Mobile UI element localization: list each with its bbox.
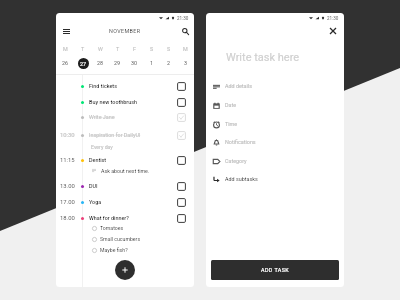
staticText: T xyxy=(81,46,85,52)
button[interactable]: Toggle done xyxy=(177,82,186,91)
button[interactable]: 1 xyxy=(143,57,160,69)
button[interactable]: Write Jane xyxy=(56,110,194,124)
staticText: M xyxy=(183,46,188,52)
button[interactable]: Add task xyxy=(115,260,135,280)
staticText: 13.00 xyxy=(60,183,75,190)
staticText: ADD TASK xyxy=(261,267,290,273)
button[interactable]: 26 xyxy=(56,57,74,69)
staticText: Every day xyxy=(91,144,113,150)
button[interactable]: Maybe fish? xyxy=(92,246,128,254)
staticText: F xyxy=(133,46,136,52)
staticText: Time xyxy=(225,121,238,127)
staticText: Add details xyxy=(225,83,252,89)
button[interactable]: 18.00 xyxy=(56,211,194,225)
button[interactable]: 3 xyxy=(177,57,194,69)
staticText: 26 xyxy=(62,60,69,66)
staticText: Date xyxy=(225,102,237,108)
staticText: DUI xyxy=(89,183,177,189)
staticText: 30 xyxy=(131,60,138,66)
button[interactable]: Add details xyxy=(206,79,344,93)
staticText: S xyxy=(150,46,154,52)
staticText: S xyxy=(167,46,171,52)
button[interactable]: Toggle done xyxy=(177,198,186,207)
staticText: Add subtasks xyxy=(225,176,258,182)
staticText: Buy new toothbrush xyxy=(89,99,177,105)
staticText: Ask about next time. xyxy=(101,168,150,174)
staticText: Write Jane xyxy=(89,114,177,120)
staticText: Small cucumbers xyxy=(100,236,141,242)
staticText: 21:30 xyxy=(327,16,339,21)
staticText: Yoga xyxy=(89,199,177,205)
button[interactable]: 30 xyxy=(126,57,143,69)
button[interactable]: Small cucumbers xyxy=(92,235,141,243)
button[interactable]: 28 xyxy=(92,57,109,69)
button[interactable]: ADD TASK xyxy=(211,260,339,280)
staticText: Notifications xyxy=(225,139,256,145)
staticText: M xyxy=(63,46,68,52)
staticText: 29 xyxy=(114,60,121,66)
staticText: What for dinner? xyxy=(89,215,177,221)
button[interactable]: Toggle done xyxy=(177,113,186,122)
button[interactable]: Tomatoes xyxy=(92,224,124,232)
staticText: Tomatoes xyxy=(100,225,124,231)
staticText: W xyxy=(98,46,103,52)
button[interactable]: Toggle done xyxy=(177,214,186,223)
staticText: 28 xyxy=(97,60,104,66)
button[interactable]: Search xyxy=(179,25,191,37)
staticText: 3 xyxy=(184,60,188,66)
button[interactable]: Toggle done xyxy=(177,98,186,107)
button[interactable]: Time xyxy=(206,117,344,131)
button[interactable]: Category xyxy=(206,154,344,168)
button[interactable]: 17.00 xyxy=(56,195,194,209)
button[interactable]: Toggle done xyxy=(177,131,186,140)
button[interactable]: 29 xyxy=(109,57,126,69)
button[interactable]: Notifications xyxy=(206,135,344,149)
staticText: Maybe fish? xyxy=(100,247,128,253)
staticText: 10:30 xyxy=(60,132,75,139)
button[interactable]: Add subtasks xyxy=(206,172,344,186)
button[interactable]: 11:15 xyxy=(56,153,194,167)
button[interactable]: 27 xyxy=(74,57,92,69)
staticText: 27 xyxy=(80,61,87,67)
button[interactable]: 2 xyxy=(160,57,177,69)
staticText: Find tickets xyxy=(89,83,177,89)
staticText: 2 xyxy=(167,60,171,66)
staticText: 21:30 xyxy=(177,16,189,21)
staticText: NOVEMBER xyxy=(109,28,141,34)
staticText: T xyxy=(116,46,120,52)
staticText: 1 xyxy=(150,60,154,66)
button[interactable]: Toggle done xyxy=(177,156,186,165)
button[interactable]: Menu xyxy=(60,25,72,37)
button[interactable]: Buy new toothbrush xyxy=(56,95,194,109)
staticText: 11:15 xyxy=(60,157,75,164)
button[interactable]: Date xyxy=(206,98,344,112)
staticText: 17.00 xyxy=(60,199,75,206)
button[interactable]: Close xyxy=(327,25,339,37)
button[interactable]: Find tickets xyxy=(56,79,194,93)
button[interactable]: 13.00 xyxy=(56,179,194,193)
staticText: Write task here xyxy=(226,51,300,64)
staticText: Dentist xyxy=(89,157,177,163)
staticText: 18.00 xyxy=(60,215,75,222)
staticText: Inspiration for DailyUI xyxy=(89,132,177,138)
staticText: Category xyxy=(225,158,247,164)
button[interactable]: 10:30 xyxy=(56,128,194,142)
button[interactable]: Toggle done xyxy=(177,182,186,191)
